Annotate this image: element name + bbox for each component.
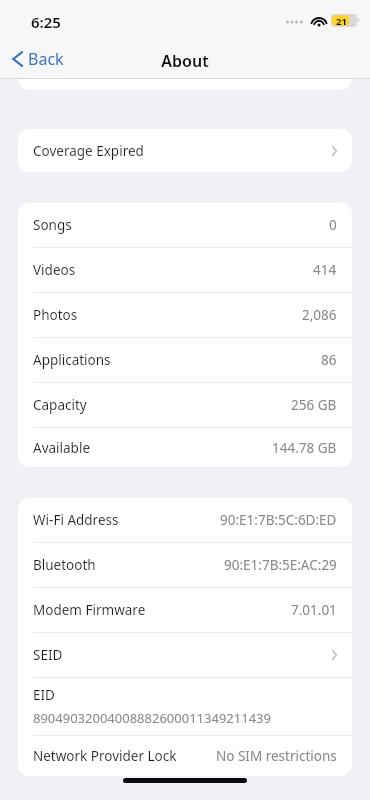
staticText: Photos — [33, 306, 78, 324]
button[interactable]: Modem Firmware — [18, 588, 352, 632]
button[interactable]: Coverage Expired — [18, 129, 352, 172]
button[interactable]: Videos — [18, 248, 352, 292]
button[interactable]: Back — [6, 44, 70, 74]
button[interactable]: SEID — [18, 633, 352, 677]
staticText: Coverage Expired — [33, 142, 144, 160]
staticText: 90:E1:7B:5C:6D:ED — [220, 511, 337, 529]
staticText: No SIM restrictions — [216, 747, 337, 765]
staticText: 2,086 — [302, 306, 337, 324]
button[interactable]: Songs — [18, 203, 352, 247]
staticText: Serial Number — [33, 55, 125, 73]
staticText: Available — [33, 439, 90, 457]
button[interactable]: Capacity — [18, 383, 352, 427]
staticText: Songs — [33, 216, 72, 234]
button[interactable]: Wi-Fi Address — [18, 498, 352, 542]
button[interactable]: Bluetooth — [18, 543, 352, 587]
staticText: Network Provider Lock — [33, 747, 177, 765]
staticText: 86 — [321, 351, 337, 369]
other: Open SEID — [331, 649, 338, 661]
staticText: 89049032004008882600011349211439 — [33, 709, 271, 727]
button[interactable]: EID — [18, 678, 352, 735]
button[interactable]: Applications — [18, 338, 352, 382]
staticText: EID — [33, 686, 55, 704]
staticText: Bluetooth — [33, 556, 96, 574]
button[interactable]: Available — [18, 428, 352, 467]
staticText: 414 — [313, 261, 337, 279]
staticText: SEID — [33, 646, 63, 664]
staticText: Capacity — [33, 396, 87, 414]
staticText: 0 — [329, 216, 337, 234]
button[interactable]: Serial Number — [18, 42, 352, 86]
staticText: 144.78 GB — [272, 439, 337, 457]
other: Open Coverage Expired — [331, 145, 338, 157]
staticText: Modem Firmware — [33, 601, 146, 619]
button[interactable]: Photos — [18, 293, 352, 337]
staticText: Back — [28, 48, 64, 70]
staticText: 90:E1:7B:5E:AC:29 — [224, 556, 337, 574]
staticText: 7.01.01 — [291, 601, 337, 619]
staticText: 6:25 — [31, 12, 61, 32]
button[interactable]: Network Provider Lock — [18, 736, 352, 776]
staticText: About — [0, 50, 370, 72]
staticText: 256 GB — [291, 396, 337, 414]
staticText: Wi-Fi Address — [33, 511, 119, 529]
staticText: Videos — [33, 261, 76, 279]
staticText: 21 — [336, 15, 347, 28]
staticText: Applications — [33, 351, 111, 369]
